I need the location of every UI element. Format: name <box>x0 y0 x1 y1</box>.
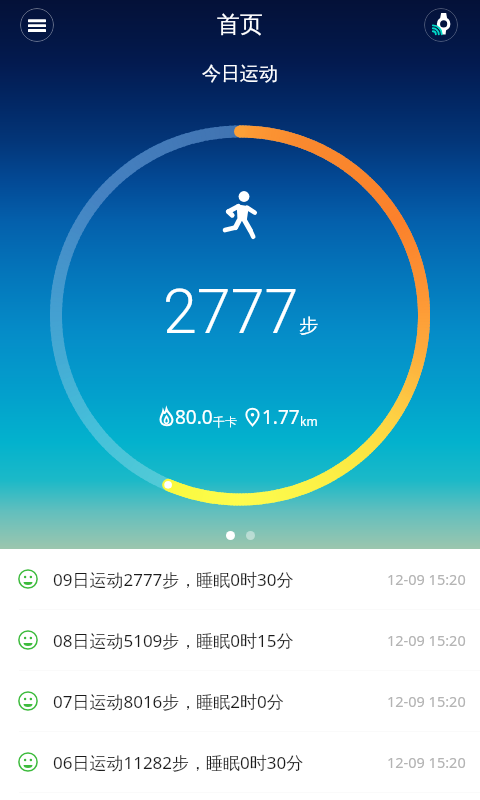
staticText: 千卡 <box>213 414 237 429</box>
staticText: 步 <box>299 314 318 338</box>
staticText: 今日运动 <box>202 62 278 86</box>
staticText: 12-09 15:20 <box>387 630 466 650</box>
button[interactable]: 08日运动5109步，睡眠0时15分 <box>0 610 480 670</box>
staticText: 80.0 <box>175 404 213 430</box>
button[interactable]: Connect watch <box>424 8 458 42</box>
staticText: 1.77 <box>262 404 300 430</box>
button[interactable]: 07日运动8016步，睡眠2时0分 <box>0 671 480 731</box>
staticText: 07日运动8016步，睡眠2时0分 <box>53 690 284 713</box>
staticText: 首页 <box>217 10 263 39</box>
staticText: 12-09 15:20 <box>387 569 466 589</box>
staticText: 09日运动2777步，睡眠0时30分 <box>53 568 294 591</box>
staticText: 12-09 15:20 <box>387 752 466 772</box>
staticText: 2777 <box>163 276 299 347</box>
staticText: km <box>300 413 318 429</box>
button[interactable]: Menu <box>20 8 54 42</box>
button[interactable]: 06日运动11282步，睡眠0时30分 <box>0 732 480 792</box>
staticText: 08日运动5109步，睡眠0时15分 <box>53 629 294 652</box>
button[interactable]: 09日运动2777步，睡眠0时30分 <box>0 549 480 609</box>
staticText: 06日运动11282步，睡眠0时30分 <box>53 751 304 774</box>
staticText: 12-09 15:20 <box>387 691 466 711</box>
